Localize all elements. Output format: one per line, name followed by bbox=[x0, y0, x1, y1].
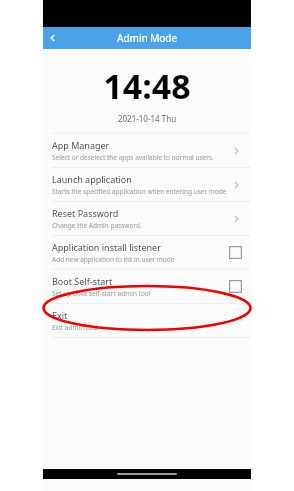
button[interactable]: Back bbox=[43, 28, 63, 48]
staticText: Application install listener bbox=[52, 241, 161, 253]
staticText: Launch application bbox=[52, 173, 132, 185]
staticText: App Manager bbox=[52, 139, 110, 151]
button[interactable]: Application install listener bbox=[43, 236, 251, 269]
staticText: Set up boot self-start admin tool bbox=[52, 289, 151, 298]
button[interactable]: Launch application bbox=[43, 168, 251, 201]
staticText: Reset Password bbox=[52, 207, 119, 219]
button[interactable]: Boot Self-start bbox=[43, 270, 251, 303]
staticText: Add new application to list in user mode bbox=[52, 255, 175, 264]
button[interactable]: App Manager bbox=[43, 134, 251, 167]
staticText: Change the Admin password. bbox=[52, 221, 142, 230]
staticText: Starts the specified application when en… bbox=[52, 187, 227, 196]
staticText: 14:48 bbox=[43, 63, 251, 109]
staticText: Admin Mode bbox=[117, 31, 178, 45]
button[interactable]: Reset Password bbox=[43, 202, 251, 235]
staticText: 2021-10-14 Thu bbox=[43, 113, 251, 124]
staticText: Exit admin tool bbox=[52, 323, 98, 332]
staticText: Boot Self-start bbox=[52, 275, 113, 287]
staticText: Select or deselect the apps available to… bbox=[52, 153, 214, 162]
staticText: Exit bbox=[52, 309, 68, 321]
button[interactable]: Exit bbox=[43, 304, 251, 337]
